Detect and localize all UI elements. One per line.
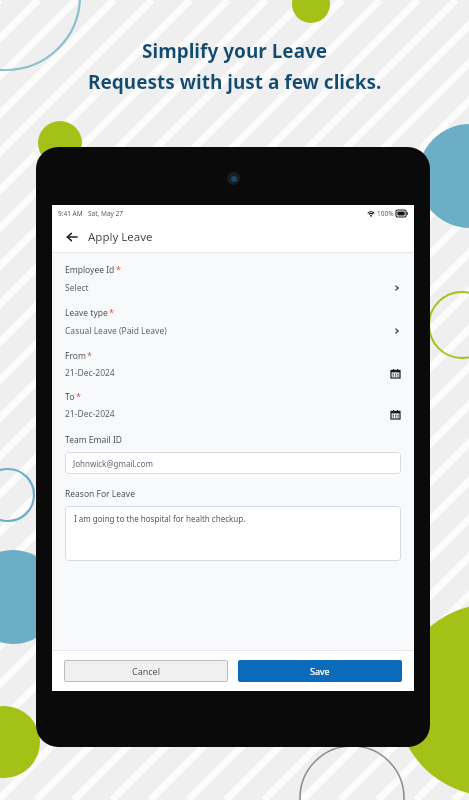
staticText: Apply Leave (88, 229, 153, 245)
staticText: * (116, 263, 121, 275)
staticText: 21-Dec-2024 (65, 408, 115, 420)
staticText: Casual Leave (Paid Leave) (65, 325, 167, 337)
staticText: Simplify your Leave (142, 38, 328, 64)
staticText: Reason For Leave (65, 488, 135, 500)
staticText: Cancel (132, 665, 161, 677)
button[interactable]: Leave type (65, 307, 401, 337)
other: Pick date (390, 409, 401, 420)
staticText: 9:41 AM (58, 209, 83, 218)
staticText: 100% (377, 209, 394, 218)
staticText: Requests with just a few clicks. (88, 69, 382, 95)
staticText: Sat, May 27 (88, 209, 123, 218)
button[interactable]: I am going to the hospital for health ch… (65, 506, 401, 561)
staticText: Select (65, 282, 89, 294)
staticText: * (109, 306, 114, 318)
staticText: Team Email ID (65, 434, 122, 446)
staticText: Employee Id (65, 264, 115, 276)
staticText: Save (310, 665, 330, 677)
staticText: * (87, 349, 92, 361)
staticText: Johnwick@gmail.com (73, 458, 153, 469)
button[interactable]: Save (238, 660, 402, 682)
button[interactable]: Employee Id (65, 264, 401, 294)
button[interactable]: Johnwick@gmail.com (65, 452, 401, 474)
other: Pick date (390, 368, 401, 379)
staticText: I am going to the hospital for health ch… (74, 513, 246, 524)
staticText: 21-Dec-2024 (65, 367, 115, 379)
button[interactable]: Back (62, 227, 82, 247)
staticText: From (65, 350, 86, 362)
button[interactable]: From (65, 350, 401, 379)
button[interactable]: To (65, 391, 401, 420)
button[interactable]: Cancel (64, 660, 228, 682)
staticText: * (76, 390, 81, 402)
staticText: To (65, 391, 75, 403)
staticText: Leave type (65, 307, 108, 319)
